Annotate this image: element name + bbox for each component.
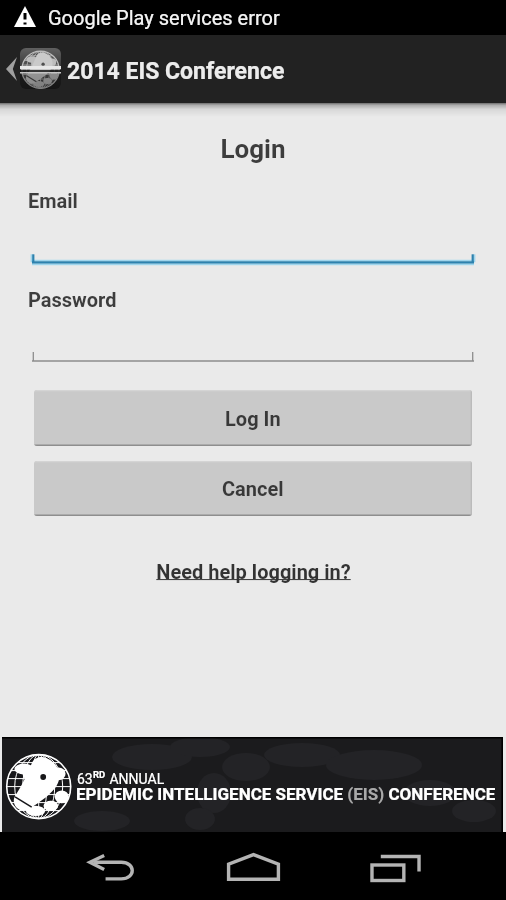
staticText: Log In xyxy=(225,407,281,430)
button[interactable]: Log In xyxy=(34,390,472,446)
staticText: Password xyxy=(28,288,117,311)
staticText: Need help logging in? xyxy=(156,560,351,583)
staticText: RD xyxy=(93,769,106,780)
button[interactable]: Navigate up xyxy=(0,35,20,103)
staticText: ANNUAL xyxy=(106,771,165,787)
button[interactable]: Home xyxy=(186,832,320,900)
staticText: Email xyxy=(28,189,78,212)
button[interactable]: Need help logging in? xyxy=(156,560,351,583)
button[interactable]: Cancel xyxy=(34,461,472,516)
staticText: Cancel xyxy=(222,477,284,500)
staticText: Login xyxy=(0,134,506,164)
staticText: 63 xyxy=(77,771,93,787)
button[interactable]: Recent apps xyxy=(328,832,462,900)
button[interactable]: Back xyxy=(45,832,179,900)
staticText: Google Play services error xyxy=(48,6,280,29)
staticText: EPIDEMIC INTELLIGENCE SERVICE (EIS) CONF… xyxy=(76,784,496,804)
staticText: 2014 EIS Conference xyxy=(67,58,285,85)
